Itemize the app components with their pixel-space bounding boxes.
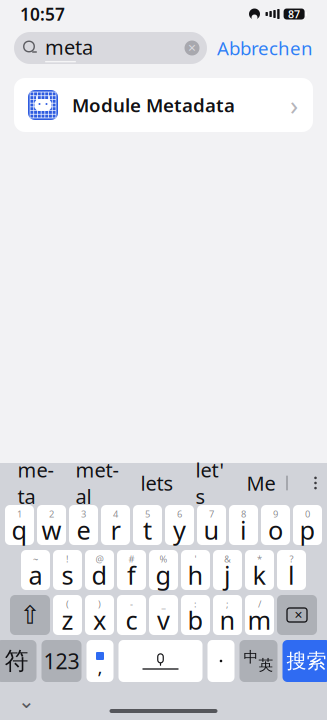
- button[interactable]: Module Metadata: [14, 78, 313, 132]
- staticText: /: [258, 598, 261, 610]
- staticText: Me: [246, 470, 275, 496]
- button[interactable]: 4: [101, 505, 130, 545]
- staticText: 中: [243, 648, 258, 666]
- button[interactable]: ): [85, 595, 114, 635]
- staticText: !: [66, 553, 69, 565]
- button[interactable]: ': [181, 550, 210, 590]
- button[interactable]: Delete: [277, 595, 317, 635]
- button[interactable]: ;: [213, 595, 242, 635]
- staticText: i: [240, 513, 247, 547]
- staticText: Module Metadata: [72, 93, 235, 117]
- staticText: w: [41, 513, 61, 547]
- staticText: metal: [75, 456, 118, 509]
- staticText: let's: [195, 456, 224, 509]
- button[interactable]: Abbrechen: [217, 32, 313, 64]
- staticText: ✕: [294, 609, 303, 621]
- staticText: 1: [17, 508, 22, 520]
- staticText: 0: [305, 508, 310, 520]
- staticText: ✕: [187, 42, 196, 54]
- staticText: u: [203, 513, 219, 547]
- button[interactable]: Comma: [86, 640, 113, 682]
- staticText: f: [127, 558, 136, 592]
- button[interactable]: metal: [64, 464, 129, 502]
- staticText: q: [11, 513, 27, 547]
- button[interactable]: 1: [5, 505, 34, 545]
- button[interactable]: (: [53, 595, 82, 635]
- staticText: d: [91, 558, 107, 592]
- staticText: 2: [49, 508, 54, 520]
- staticText: _: [161, 598, 165, 610]
- staticText: #: [128, 553, 134, 565]
- button[interactable]: !: [53, 550, 82, 590]
- staticText: g: [155, 558, 171, 592]
- button[interactable]: let's: [184, 464, 235, 502]
- button[interactable]: &: [213, 550, 242, 590]
- button[interactable]: 2: [37, 505, 66, 545]
- button[interactable]: @: [85, 550, 114, 590]
- staticText: meta: [17, 456, 53, 509]
- staticText: 英: [258, 656, 273, 674]
- staticText: 搜索: [286, 649, 326, 673]
- staticText: ): [98, 598, 101, 610]
- button[interactable]: Me: [235, 464, 286, 502]
- staticText: 5: [145, 508, 150, 520]
- staticText: c: [125, 603, 137, 637]
- staticText: v: [157, 603, 170, 637]
- button[interactable]: Chinese English toggle: [239, 640, 277, 682]
- staticText: r: [110, 513, 120, 547]
- staticText: ⌄: [18, 690, 35, 712]
- staticText: b: [187, 603, 203, 637]
- staticText: x: [93, 603, 106, 637]
- button[interactable]: 9: [261, 505, 290, 545]
- staticText: ?: [289, 553, 293, 565]
- button[interactable]: 搜索: [282, 640, 327, 682]
- staticText: 6: [177, 508, 182, 520]
- staticText: e: [76, 513, 90, 547]
- button[interactable]: 符: [0, 640, 36, 682]
- button[interactable]: Clear text: [180, 34, 204, 62]
- staticText: lets: [140, 470, 173, 496]
- button[interactable]: 123: [41, 640, 81, 682]
- button[interactable]: _: [149, 595, 178, 635]
- staticText: t: [143, 513, 152, 547]
- button[interactable]: ~: [21, 550, 50, 590]
- button[interactable]: :: [181, 595, 210, 635]
- staticText: 8: [241, 508, 246, 520]
- staticText: ;: [226, 598, 229, 610]
- button[interactable]: ?: [277, 550, 306, 590]
- button[interactable]: 5: [133, 505, 162, 545]
- staticText: Abbrechen: [217, 36, 313, 60]
- staticText: 87: [288, 7, 300, 21]
- staticText: &: [224, 553, 231, 565]
- button[interactable]: *: [245, 550, 274, 590]
- button[interactable]: %: [149, 550, 178, 590]
- button[interactable]: /: [245, 595, 274, 635]
- staticText: s: [61, 558, 73, 592]
- staticText: n: [219, 603, 235, 637]
- staticText: meta: [45, 34, 93, 60]
- button[interactable]: 7: [197, 505, 226, 545]
- button[interactable]: meta: [6, 464, 64, 502]
- staticText: o: [268, 513, 283, 547]
- button[interactable]: lets: [129, 464, 184, 502]
- staticText: *: [257, 553, 262, 565]
- button[interactable]: Period: [207, 640, 234, 682]
- staticText: a: [28, 558, 42, 592]
- staticText: ': [194, 553, 196, 565]
- button[interactable]: Hide keyboard: [9, 689, 43, 713]
- button[interactable]: #: [117, 550, 146, 590]
- button[interactable]: More suggestions: [300, 464, 327, 502]
- button[interactable]: 0: [293, 505, 322, 545]
- staticText: m: [247, 603, 271, 637]
- staticText: %: [159, 553, 167, 565]
- button[interactable]: 8: [229, 505, 258, 545]
- button[interactable]: Space: [118, 640, 202, 682]
- staticText: y: [173, 513, 186, 547]
- staticText: 9: [273, 508, 278, 520]
- staticText: l: [288, 558, 295, 592]
- button[interactable]: 6: [165, 505, 194, 545]
- button[interactable]: -: [117, 595, 146, 635]
- button[interactable]: 3: [69, 505, 98, 545]
- staticText: 7: [209, 508, 214, 520]
- button[interactable]: Shift: [10, 595, 50, 635]
